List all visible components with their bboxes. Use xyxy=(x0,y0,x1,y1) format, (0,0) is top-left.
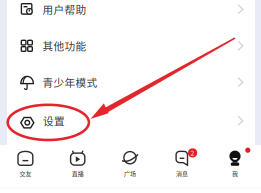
button[interactable] xyxy=(0,145,50,183)
staticText: 用户帮助 xyxy=(42,1,86,17)
staticText: 直播 xyxy=(72,169,84,178)
button[interactable] xyxy=(157,145,207,183)
button[interactable] xyxy=(105,145,155,183)
staticText: 消息 xyxy=(176,169,188,178)
staticText: 2 xyxy=(191,148,195,158)
staticText: 青少年模式 xyxy=(42,74,97,90)
staticText: 交友 xyxy=(19,169,31,178)
button[interactable] xyxy=(7,65,255,101)
staticText: 其他功能 xyxy=(42,38,86,53)
staticText: 我 xyxy=(232,169,238,178)
button[interactable] xyxy=(7,103,255,140)
button[interactable] xyxy=(53,145,103,183)
button[interactable] xyxy=(210,145,260,183)
staticText: 设置 xyxy=(43,113,65,128)
staticText: 广场 xyxy=(124,169,136,178)
button[interactable] xyxy=(7,0,255,28)
button[interactable] xyxy=(7,28,255,65)
